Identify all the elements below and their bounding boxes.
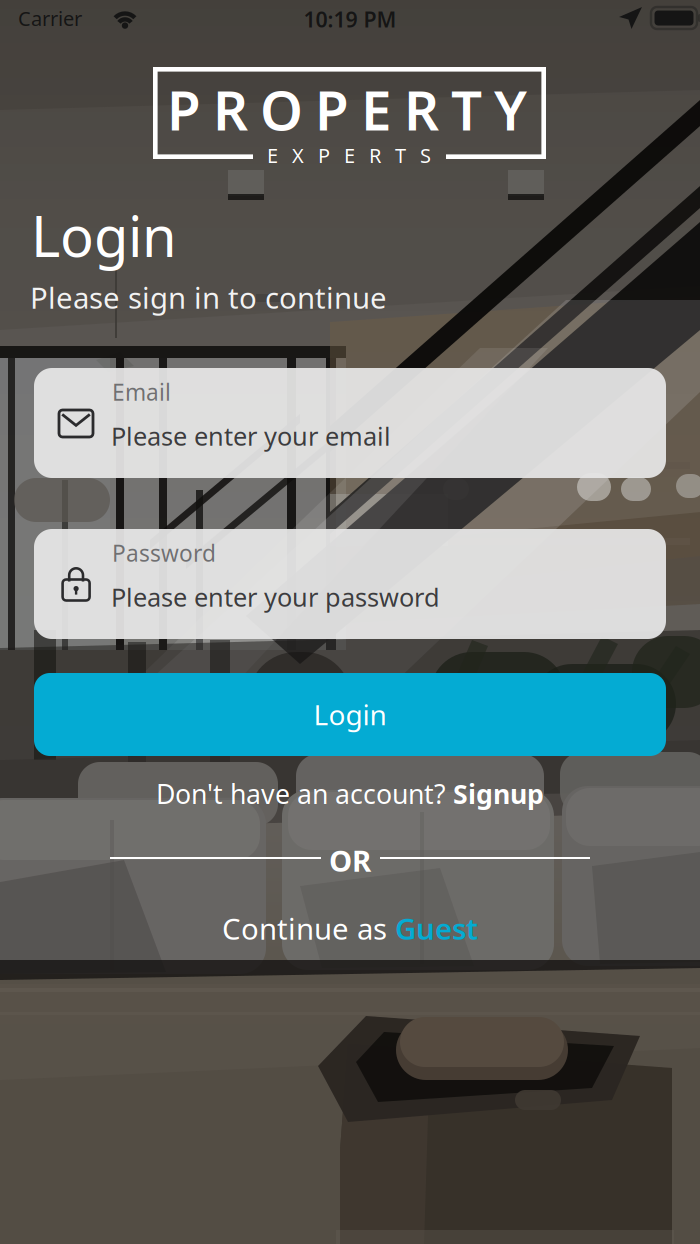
staticText: Please enter your email xyxy=(111,419,391,453)
staticText: Login xyxy=(313,696,386,733)
staticText: Signup xyxy=(453,776,544,811)
staticText: Password xyxy=(112,538,216,568)
staticText: Email xyxy=(112,377,171,407)
button[interactable]: Email xyxy=(34,368,666,478)
button[interactable]: Login xyxy=(34,673,666,756)
button[interactable]: Don't have an account? xyxy=(0,776,700,811)
staticText: PROPERTY xyxy=(167,73,527,146)
button[interactable]: Continue as xyxy=(0,909,700,948)
staticText: Login xyxy=(31,198,177,272)
staticText: EXPERTS xyxy=(267,142,431,169)
staticText: OR xyxy=(329,841,371,880)
staticText: 10:19 PM xyxy=(303,5,396,33)
staticText: Continue as xyxy=(222,909,395,948)
staticText: Please sign in to continue xyxy=(30,278,387,317)
staticText: Please enter your password xyxy=(111,580,440,614)
staticText: Guest xyxy=(395,909,478,948)
staticText: Carrier xyxy=(18,5,82,32)
button[interactable]: Password xyxy=(34,529,666,639)
staticText: Don't have an account? xyxy=(156,776,453,811)
